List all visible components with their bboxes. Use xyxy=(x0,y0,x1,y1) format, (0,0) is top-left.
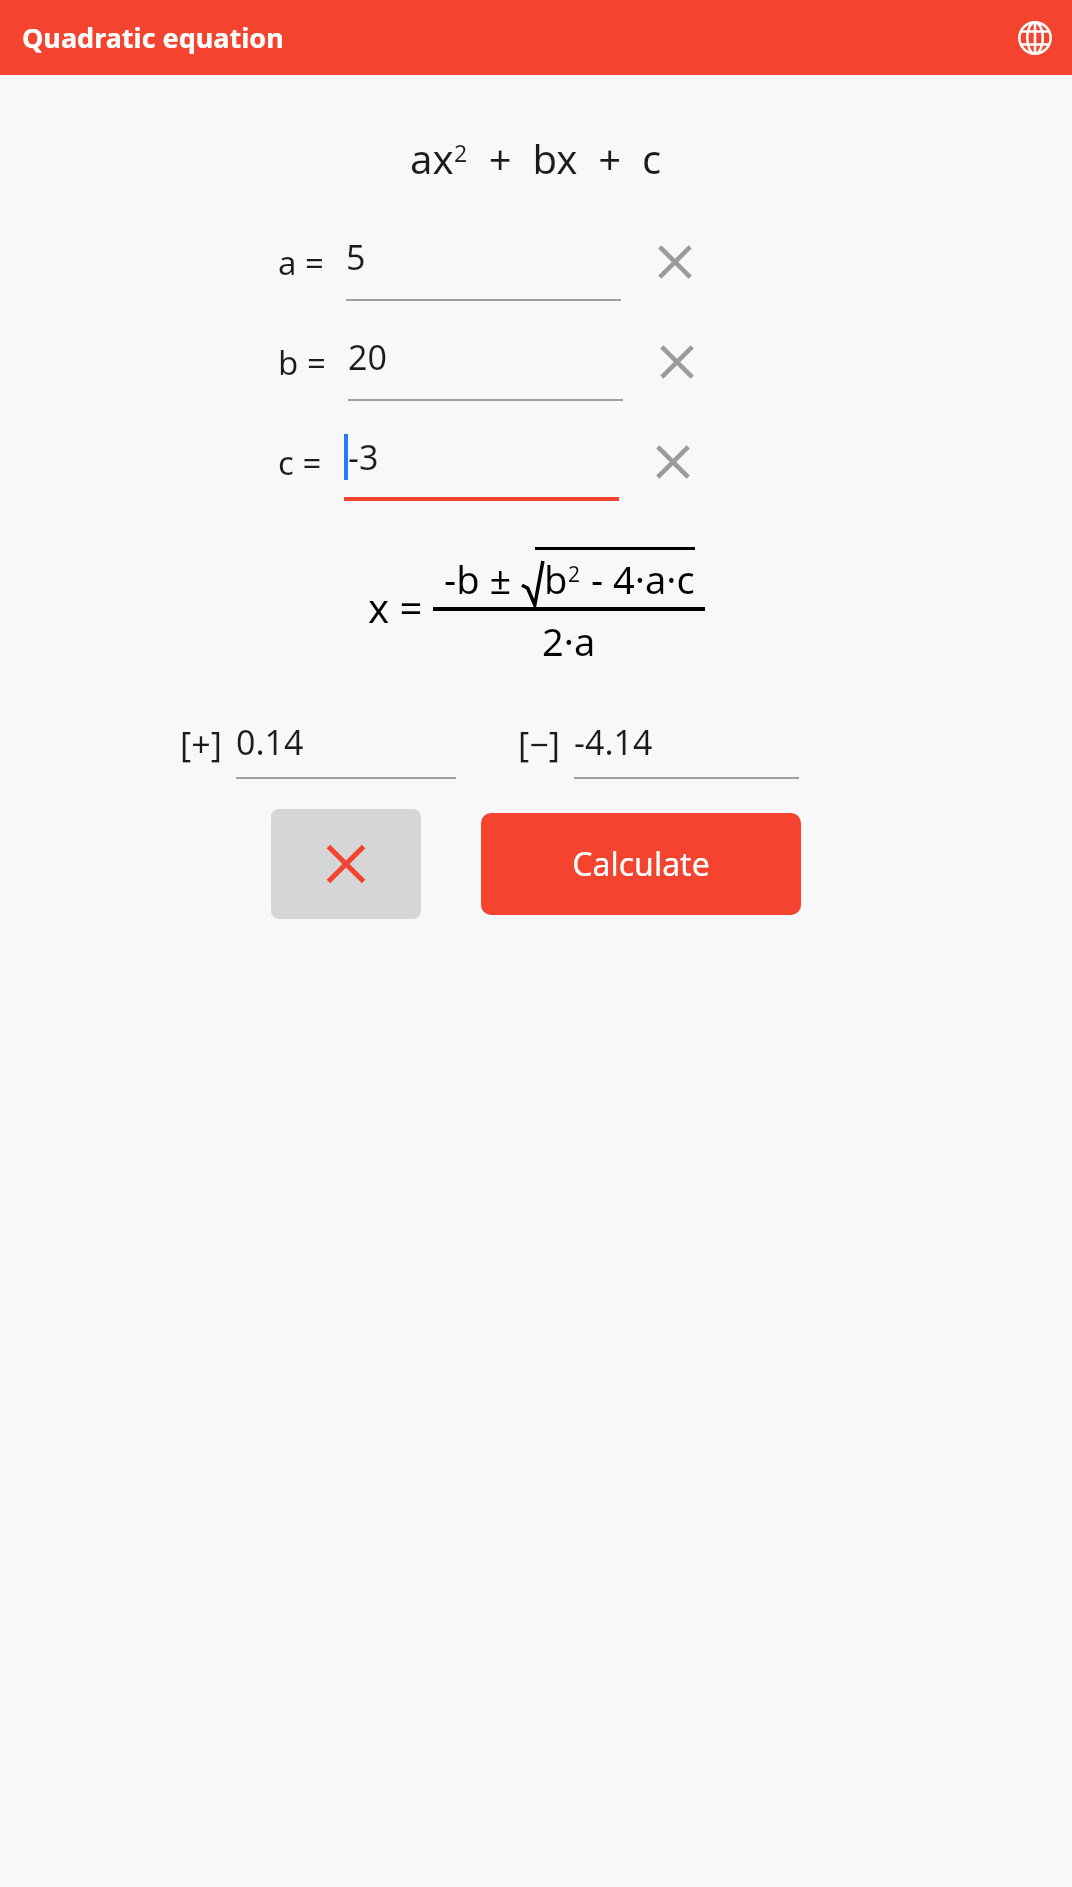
button[interactable]: 20 xyxy=(348,323,623,401)
button[interactable]: 5 xyxy=(346,223,621,301)
button[interactable]: Change language xyxy=(1011,14,1059,62)
staticText: + bx + c xyxy=(468,131,662,185)
button[interactable]: Calculate xyxy=(481,813,801,915)
button[interactable]: -4.14 xyxy=(574,719,799,777)
staticText: x = xyxy=(368,580,423,634)
button[interactable]: Clear c xyxy=(641,430,705,494)
staticText: a = xyxy=(278,240,324,285)
button[interactable]: Clear a xyxy=(643,230,707,294)
staticText: 20 xyxy=(348,334,387,380)
staticText: -b ± xyxy=(444,553,522,605)
button[interactable]: 0.14 xyxy=(236,719,456,777)
staticText: 2 xyxy=(454,137,468,168)
staticText: [−] xyxy=(518,721,560,767)
staticText: 2 xyxy=(568,560,581,589)
button[interactable]: Clear b xyxy=(645,330,709,394)
staticText: 0.14 xyxy=(236,719,304,765)
staticText: -4.14 xyxy=(574,719,653,765)
staticText: Calculate xyxy=(572,842,710,886)
staticText: Quadratic equation xyxy=(22,19,284,56)
staticText: -3 xyxy=(348,434,379,480)
staticText: - 4·a·c xyxy=(581,553,695,605)
staticText: c = xyxy=(278,440,322,485)
staticText: 5 xyxy=(346,234,366,280)
staticText: ax xyxy=(410,131,454,185)
staticText: [+] xyxy=(180,721,222,767)
staticText: b = xyxy=(278,340,326,385)
button[interactable]: -3 xyxy=(344,423,619,501)
button[interactable]: Clear all xyxy=(271,809,421,919)
staticText: b xyxy=(544,553,568,605)
staticText: 2·a xyxy=(542,615,596,667)
